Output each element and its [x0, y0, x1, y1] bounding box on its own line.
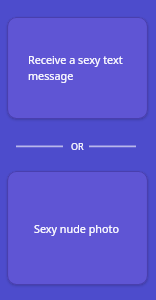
- staticText: Receive a sexy text message: [28, 52, 127, 84]
- button[interactable]: Receive a sexy text message: [7, 17, 148, 119]
- button[interactable]: Sexy nude photo: [7, 171, 148, 285]
- staticText: OR: [71, 140, 84, 150]
- staticText: Sexy nude photo: [34, 221, 119, 236]
